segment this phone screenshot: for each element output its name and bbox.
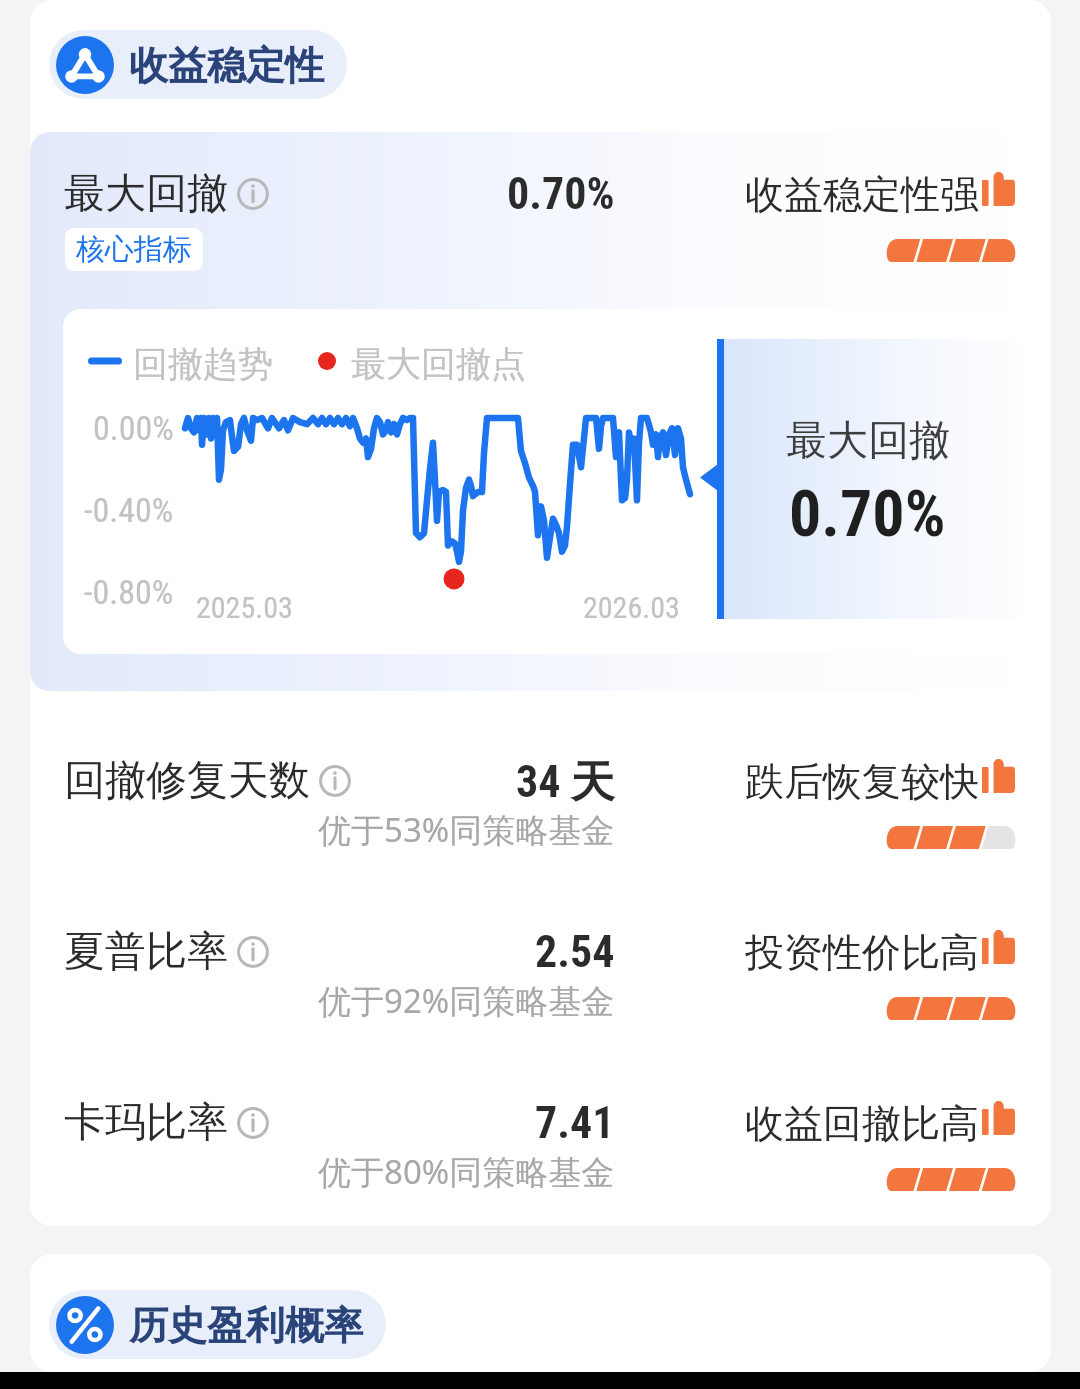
staticText: 卡玛比率 — [64, 1097, 228, 1149]
button[interactable]: 卡玛比率 — [30, 1097, 1051, 1217]
button[interactable]: 夏普比率 — [30, 926, 1051, 1046]
staticText: 0.70% — [507, 168, 615, 220]
staticText: -0.80% — [84, 572, 174, 612]
staticText: 收益回撤比高 — [745, 1099, 979, 1148]
staticText: 收益稳定性强 — [745, 170, 979, 219]
staticText: 收益稳定性 — [129, 41, 324, 90]
staticText: 2025.03 — [196, 590, 293, 625]
staticText: 34 天 — [516, 755, 615, 810]
staticText: 2.54 — [535, 926, 615, 978]
staticText: 投资性价比高 — [745, 928, 979, 977]
staticText: 最大回撤点 — [351, 342, 526, 386]
button[interactable]: 收益稳定性 — [49, 30, 347, 99]
staticText: 回撤趋势 — [133, 342, 273, 386]
staticText: 7.41 — [535, 1097, 615, 1149]
button[interactable]: 最大回撤 — [30, 168, 1051, 288]
staticText: 2026.03 — [583, 590, 680, 625]
staticText: 优于92%同策略基金 — [318, 978, 615, 1023]
staticText: 夏普比率 — [64, 926, 228, 978]
staticText: -0.40% — [84, 490, 174, 530]
staticText: 0.70% — [789, 477, 946, 552]
staticText: 核心指标 — [76, 231, 192, 268]
staticText: 跌后恢复较快 — [745, 757, 979, 806]
button[interactable]: 回撤修复天数 — [30, 755, 1051, 875]
staticText: 历史盈利概率 — [129, 1301, 363, 1350]
staticText: 最大回撤 — [64, 168, 228, 220]
staticText: 0.00% — [93, 408, 174, 448]
staticText: 优于80%同策略基金 — [318, 1149, 615, 1194]
button[interactable]: 历史盈利概率 — [49, 1290, 386, 1359]
staticText: 优于53%同策略基金 — [318, 807, 615, 852]
staticText: 最大回撤 — [786, 415, 950, 467]
staticText: 回撤修复天数 — [64, 755, 310, 807]
